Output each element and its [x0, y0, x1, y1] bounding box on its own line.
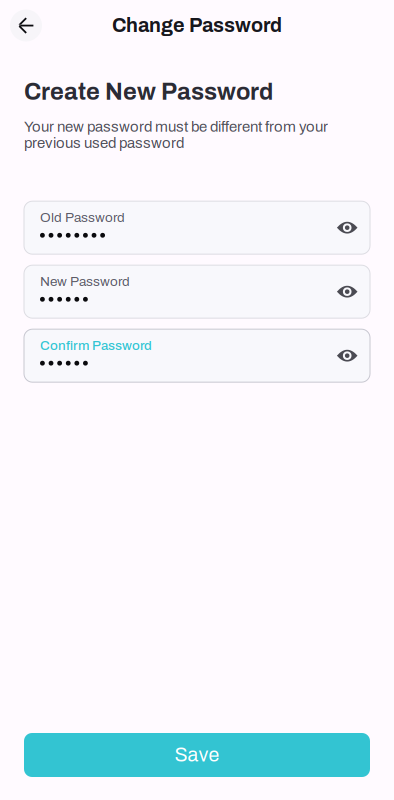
staticText: Create New Password — [24, 79, 273, 105]
staticText: Confirm Password — [40, 338, 152, 353]
staticText: Save — [174, 744, 219, 766]
button[interactable]: Confirm Password — [24, 329, 370, 382]
staticText: Change Password — [112, 15, 282, 36]
staticText: Your new password must be different from… — [24, 119, 328, 151]
staticText: New Password — [40, 274, 130, 289]
button[interactable]: Old Password — [24, 201, 370, 254]
button[interactable]: New Password — [24, 265, 370, 318]
button[interactable]: Back — [10, 9, 42, 41]
button[interactable]: Save — [24, 733, 370, 777]
staticText: Old Password — [40, 210, 125, 225]
